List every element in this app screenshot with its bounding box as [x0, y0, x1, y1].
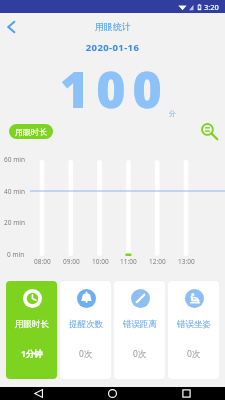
staticText: 3:20: [204, 2, 219, 12]
staticText: 错误坐姿: [177, 319, 211, 330]
button[interactable]: Back: [0, 16, 22, 38]
staticText: 11:00: [120, 257, 137, 266]
button[interactable]: Recents: [179, 387, 193, 400]
button[interactable]: 用眼时长: [6, 281, 57, 379]
staticText: 用眼时长: [15, 127, 47, 137]
staticText: 错误距离: [123, 319, 157, 330]
staticText: 0次: [79, 348, 93, 360]
staticText: 09:00: [63, 257, 80, 266]
button[interactable]: Back: [32, 387, 46, 400]
staticText: 12:00: [149, 257, 166, 266]
staticText: 用眼统计: [95, 21, 131, 32]
staticText: 40 min: [4, 187, 25, 196]
staticText: 20 min: [4, 218, 25, 227]
button[interactable]: 错误距离: [114, 281, 165, 379]
button[interactable]: Zoom: [198, 120, 220, 142]
staticText: 用眼时长: [15, 319, 49, 330]
staticText: 分: [169, 109, 176, 118]
staticText: 13:00: [178, 257, 195, 266]
button[interactable]: Home: [105, 387, 119, 400]
staticText: 0次: [187, 348, 201, 360]
staticText: 0次: [133, 348, 147, 360]
button[interactable]: 错误坐姿: [168, 281, 219, 379]
button[interactable]: 提醒次数: [60, 281, 111, 379]
staticText: 0 min: [7, 250, 25, 259]
staticText: 100: [60, 55, 169, 123]
staticText: 10:00: [92, 257, 109, 266]
button[interactable]: 用眼时长: [9, 124, 53, 139]
staticText: 08:00: [34, 257, 51, 266]
staticText: 提醒次数: [69, 319, 103, 330]
staticText: 60 min: [4, 155, 25, 164]
staticText: 2020-01-16: [0, 41, 225, 54]
staticText: 1分钟: [21, 348, 43, 360]
